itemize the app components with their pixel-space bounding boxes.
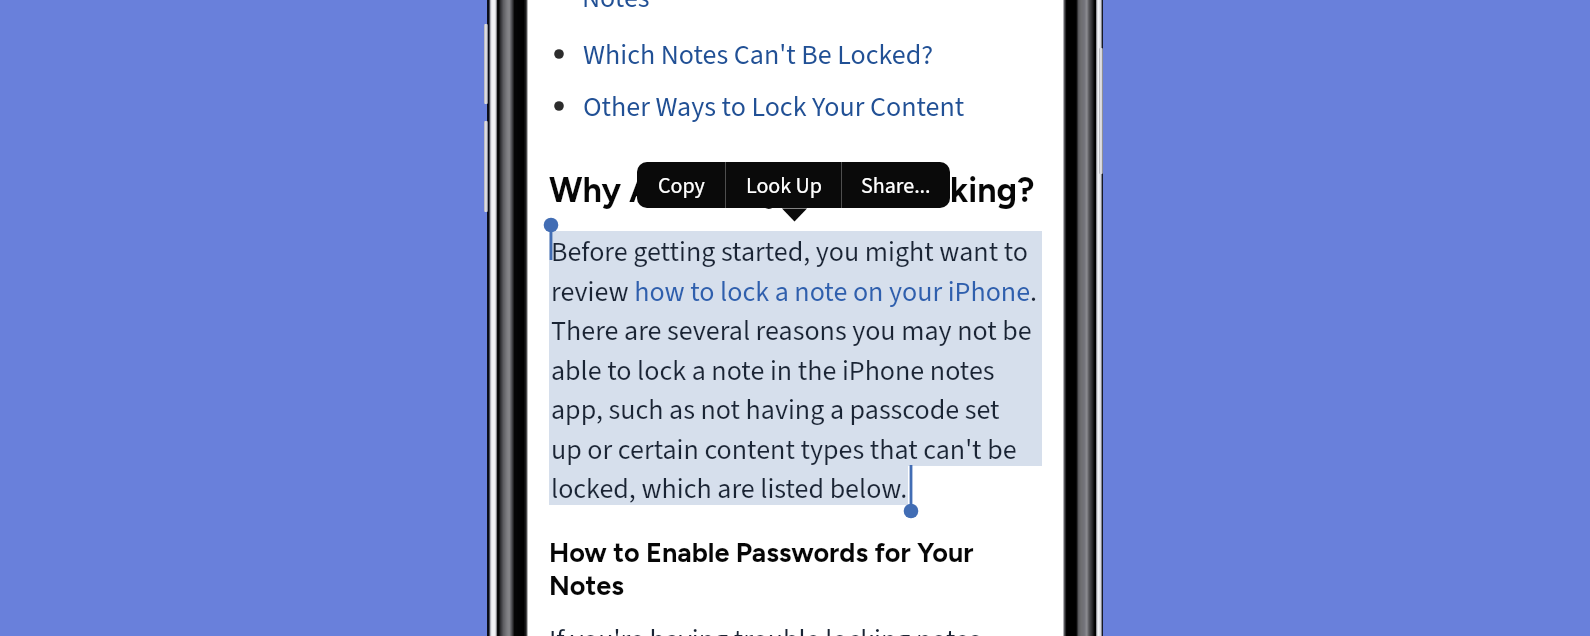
button[interactable]: Share... [842, 162, 950, 208]
staticText: Look Up [746, 170, 822, 201]
staticText: review how to lock a note on your iPhone… [551, 272, 1038, 312]
staticText: app, such as not having a passcode set [551, 390, 1000, 430]
button[interactable]: Other Ways to Lock Your Content [549, 87, 1029, 125]
staticText: locked, which are listed below. [551, 469, 908, 509]
staticText: Copy [658, 170, 705, 201]
staticText: Which Notes Can't Be Locked? [583, 35, 934, 73]
staticText: Notes [582, 0, 650, 18]
button[interactable]: Look Up [726, 162, 841, 208]
staticText: If you're having trouble locking notes [549, 620, 981, 636]
staticText: Other Ways to Lock Your Content [583, 87, 965, 125]
staticText: Notes [549, 569, 624, 601]
button[interactable]: Copy [637, 162, 725, 208]
staticText: There are several reasons you may not be [551, 311, 1032, 351]
staticText: Why Aren't My Notes Locking? [549, 170, 1069, 211]
staticText: How to Enable Passwords for Your [549, 536, 974, 568]
button[interactable]: Which Notes Can't Be Locked? [549, 35, 1029, 73]
staticText: up or certain content types that can't b… [551, 430, 1017, 470]
staticText: able to lock a note in the iPhone notes [551, 351, 995, 391]
staticText: Share... [861, 170, 931, 201]
staticText: Before getting started, you might want t… [551, 232, 1028, 272]
